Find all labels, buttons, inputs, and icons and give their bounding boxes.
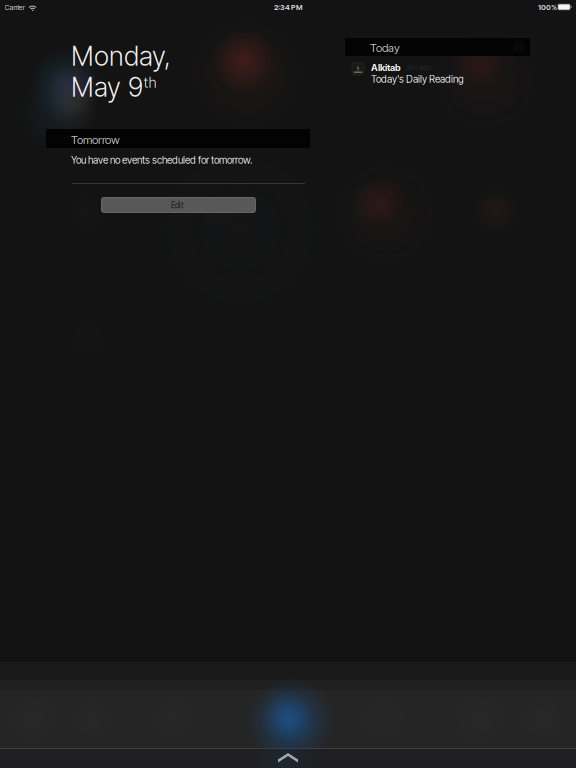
button[interactable]: Close Notification Center [278,753,298,763]
staticText: 2:34 PM [274,3,302,12]
staticText: 9m ago [407,63,431,72]
staticText: Alkitab [371,62,401,73]
staticText: Today's Daily Reading [371,73,464,85]
staticText: Today [370,41,400,55]
button[interactable]: Edit [101,197,256,213]
staticText: 100% [538,3,557,12]
staticText: th [143,73,156,91]
staticText: Carrier [4,3,24,12]
staticText: May 9 [71,71,143,103]
staticText: You have no events scheduled for tomorro… [71,154,252,166]
staticText: Edit [171,200,184,210]
button[interactable]: Alkitab [345,62,530,88]
staticText: Tomorrow [71,133,120,147]
staticText: Monday, [71,40,171,72]
